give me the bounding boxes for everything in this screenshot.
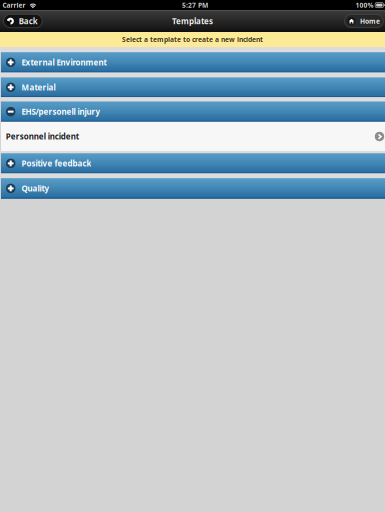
staticText: Personnel incident [6,131,79,142]
staticText: 100% [356,1,374,10]
button[interactable]: Material [0,77,385,97]
staticText: Home [360,17,380,26]
staticText: 5:27 PM [182,1,208,10]
staticText: Material [21,82,55,93]
staticText: Quality [21,183,49,194]
staticText: Positive feedback [21,158,91,169]
staticText: Select a template to create a new incide… [122,35,263,44]
button[interactable]: EHS/personell injury [0,101,385,122]
button[interactable]: Home [344,15,383,28]
staticText: Templates [172,16,213,26]
button[interactable]: Back [4,14,42,28]
staticText: Carrier [3,1,26,10]
button[interactable]: Quality [0,178,385,199]
staticText: Back [19,16,38,26]
button[interactable]: Personnel incident [0,122,385,151]
button[interactable]: External Environment [0,52,385,72]
staticText: EHS/personell injury [21,106,100,117]
staticText: External Environment [21,57,106,68]
button[interactable]: Positive feedback [0,153,385,173]
